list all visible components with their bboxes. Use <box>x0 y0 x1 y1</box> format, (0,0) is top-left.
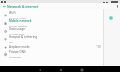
staticText: Airplane mode <box>9 45 30 49</box>
staticText: Off <box>9 40 13 43</box>
staticText: Hotspot & tethering <box>9 35 38 39</box>
button[interactable]: More options <box>115 4 119 8</box>
button[interactable]: Mobile network <box>0 19 103 27</box>
staticText: Mobile network <box>9 19 32 23</box>
staticText: Private DNS <box>9 50 26 54</box>
button[interactable]: Wi‑Fi <box>0 11 103 19</box>
button[interactable]: Airplane mode <box>0 43 103 50</box>
button[interactable]: Recent apps <box>79 67 84 72</box>
button[interactable] <box>96 45 101 48</box>
button[interactable]: Private DNS <box>0 50 103 58</box>
button[interactable]: Data usage <box>0 27 103 35</box>
staticText: TP‑LINK_A24C <box>9 16 26 19</box>
staticText: Wi‑Fi <box>9 11 16 15</box>
button[interactable]: Network status <box>109 16 113 20</box>
staticText: Network & internet <box>7 4 39 9</box>
staticText: 2.41 GB used <box>9 32 25 35</box>
button[interactable]: Back <box>37 67 42 72</box>
staticText: Carrier settings <box>9 24 28 27</box>
staticText: Automatic <box>9 55 22 58</box>
button[interactable]: Back <box>2 4 6 8</box>
staticText: Data usage <box>9 27 25 31</box>
button[interactable]: Hotspot & tethering <box>0 35 103 43</box>
button[interactable]: Home <box>58 67 63 72</box>
